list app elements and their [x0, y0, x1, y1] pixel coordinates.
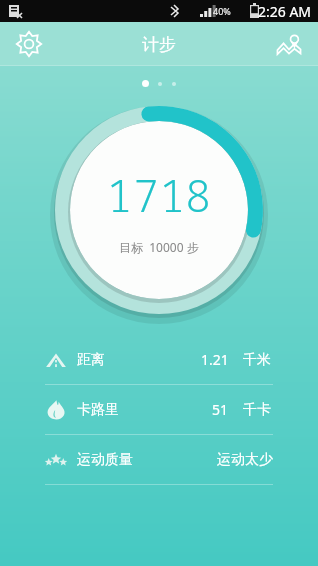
staticText: 1718 — [106, 165, 212, 225]
button[interactable]: 运动质量 — [45, 435, 273, 484]
staticText: 卡路里 — [77, 401, 119, 419]
button[interactable]: Map — [272, 27, 306, 61]
staticText: 目标 10000 步 — [119, 239, 199, 255]
button[interactable]: 距离 — [45, 335, 273, 384]
staticText: 千卡 — [243, 401, 271, 419]
staticText: 运动质量 — [77, 451, 133, 469]
staticText: 计步 — [142, 34, 176, 55]
staticText: 运动太少 — [217, 451, 273, 469]
staticText: 距离 — [77, 351, 105, 369]
staticText: 51 — [212, 400, 229, 419]
staticText: 40% — [213, 5, 231, 17]
button[interactable]: Settings — [12, 27, 46, 61]
button[interactable]: 卡路里 — [45, 385, 273, 434]
staticText: 1.21 — [201, 350, 229, 369]
staticText: 2:26 AM — [258, 2, 312, 21]
staticText: 千米 — [243, 351, 271, 369]
